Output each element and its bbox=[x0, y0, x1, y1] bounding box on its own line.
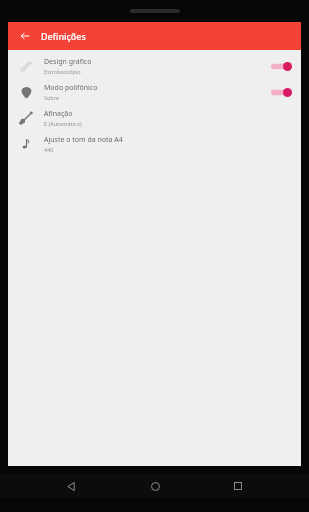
staticText: E (Automático) bbox=[44, 120, 82, 127]
button[interactable]: Ajuste o tom da nota A4 bbox=[8, 131, 301, 157]
staticText: Ajuste o tom da nota A4 bbox=[44, 135, 123, 145]
button[interactable]: Toggle Design gráfico bbox=[269, 57, 293, 75]
button[interactable]: Afinação bbox=[8, 105, 301, 131]
staticText: Definições bbox=[41, 30, 86, 42]
button[interactable]: Home bbox=[142, 474, 168, 498]
button[interactable]: Recents bbox=[225, 474, 251, 498]
staticText: Afinação bbox=[44, 109, 73, 119]
staticText: Estroboscópio bbox=[44, 68, 81, 75]
staticText: Modo polifônico bbox=[44, 83, 98, 93]
staticText: 440 bbox=[44, 146, 54, 153]
button[interactable]: Back bbox=[58, 474, 84, 498]
button[interactable]: Modo polifônico bbox=[8, 79, 301, 105]
staticText: Design gráfico bbox=[44, 57, 92, 67]
button[interactable]: Back bbox=[16, 27, 34, 45]
staticText: Sobre bbox=[44, 94, 59, 101]
button[interactable]: Toggle Modo polifônico bbox=[269, 83, 293, 101]
button[interactable]: Design gráfico bbox=[8, 53, 301, 79]
